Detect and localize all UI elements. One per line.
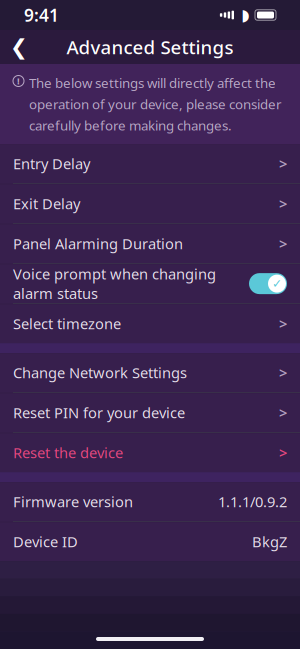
staticText: Reset the device	[13, 443, 123, 462]
button[interactable]: Select timezone	[0, 304, 300, 343]
staticText: 1.1.1/0.9.2	[218, 492, 287, 511]
staticText: !	[17, 75, 20, 87]
staticText: Firmware version	[13, 492, 133, 511]
staticText: ❮	[10, 35, 28, 59]
button[interactable]: Reset PIN for your device	[0, 393, 300, 432]
button[interactable]: Change Network Settings	[0, 353, 300, 392]
staticText: >	[279, 194, 287, 213]
staticText: BkgZ	[252, 532, 287, 551]
staticText: ◗	[241, 6, 249, 24]
button[interactable]: Back	[0, 30, 38, 64]
staticText: >	[279, 314, 287, 333]
button[interactable]: Reset the device	[0, 433, 300, 472]
button[interactable]: Panel Alarming Duration	[0, 224, 300, 263]
staticText: Change Network Settings	[13, 363, 187, 382]
staticText: >	[279, 443, 287, 462]
staticText: Exit Delay	[13, 194, 80, 213]
button[interactable]: Exit Delay	[0, 184, 300, 223]
staticText: Advanced Settings	[66, 35, 233, 59]
staticText: >	[279, 234, 287, 253]
staticText: >	[279, 363, 287, 382]
staticText: Panel Alarming Duration	[13, 234, 183, 253]
staticText: ✓	[272, 277, 282, 290]
staticText: Device ID	[13, 532, 78, 551]
staticText: Entry Delay	[13, 154, 90, 173]
staticText: Select timezone	[13, 314, 121, 333]
staticText: >	[279, 403, 287, 422]
staticText: 9:41	[24, 3, 59, 26]
staticText: Voice prompt when changing alarm status	[13, 264, 216, 303]
staticText: The below settings will directly affect …	[29, 74, 282, 134]
button[interactable]: Entry Delay	[0, 144, 300, 183]
staticText: Reset PIN for your device	[13, 403, 185, 422]
staticText: >	[279, 154, 287, 173]
button[interactable]: Voice prompt when changing alarm status	[249, 273, 287, 294]
